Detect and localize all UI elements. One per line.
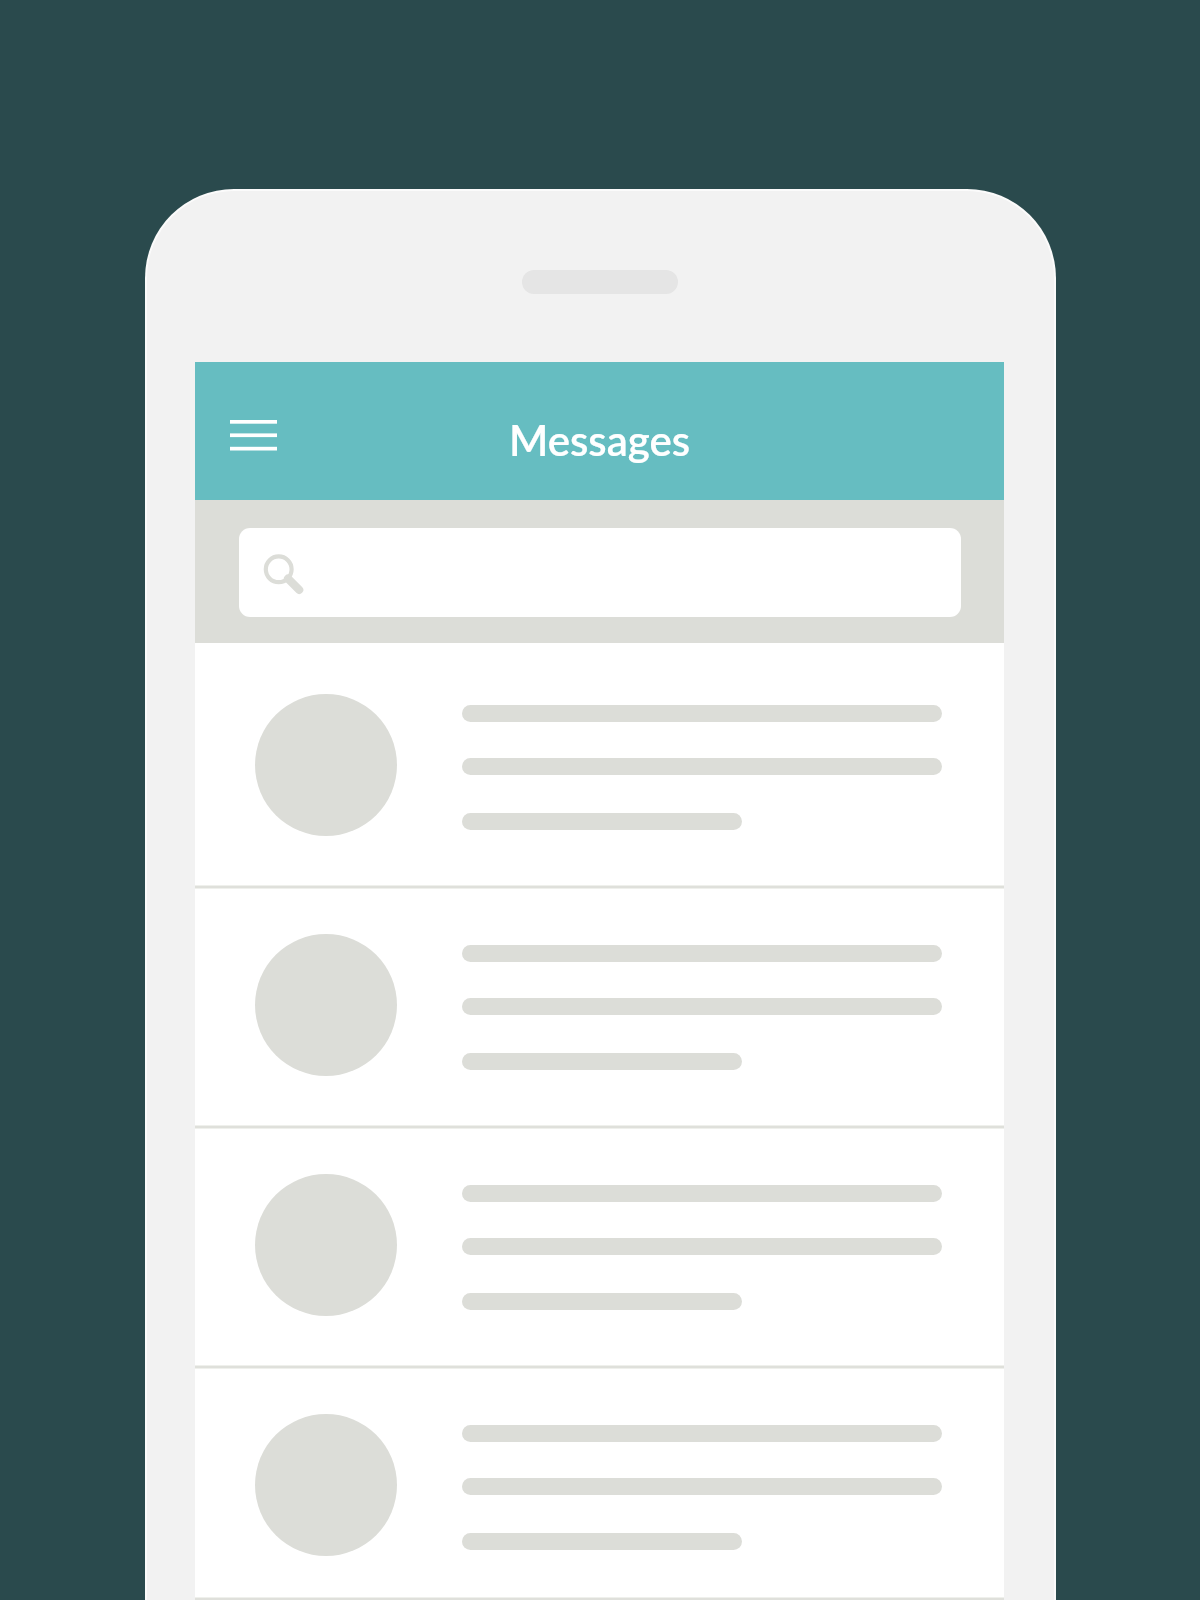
staticText: Messages	[195, 415, 1004, 465]
button[interactable]: Open conversation	[195, 1123, 1004, 1363]
button[interactable]: Open navigation menu	[206, 386, 300, 484]
button[interactable]: Open conversation	[195, 643, 1004, 883]
button[interactable]: Open conversation	[195, 1363, 1004, 1600]
button[interactable]: Search messages	[239, 528, 961, 617]
button[interactable]: Open conversation	[195, 883, 1004, 1123]
